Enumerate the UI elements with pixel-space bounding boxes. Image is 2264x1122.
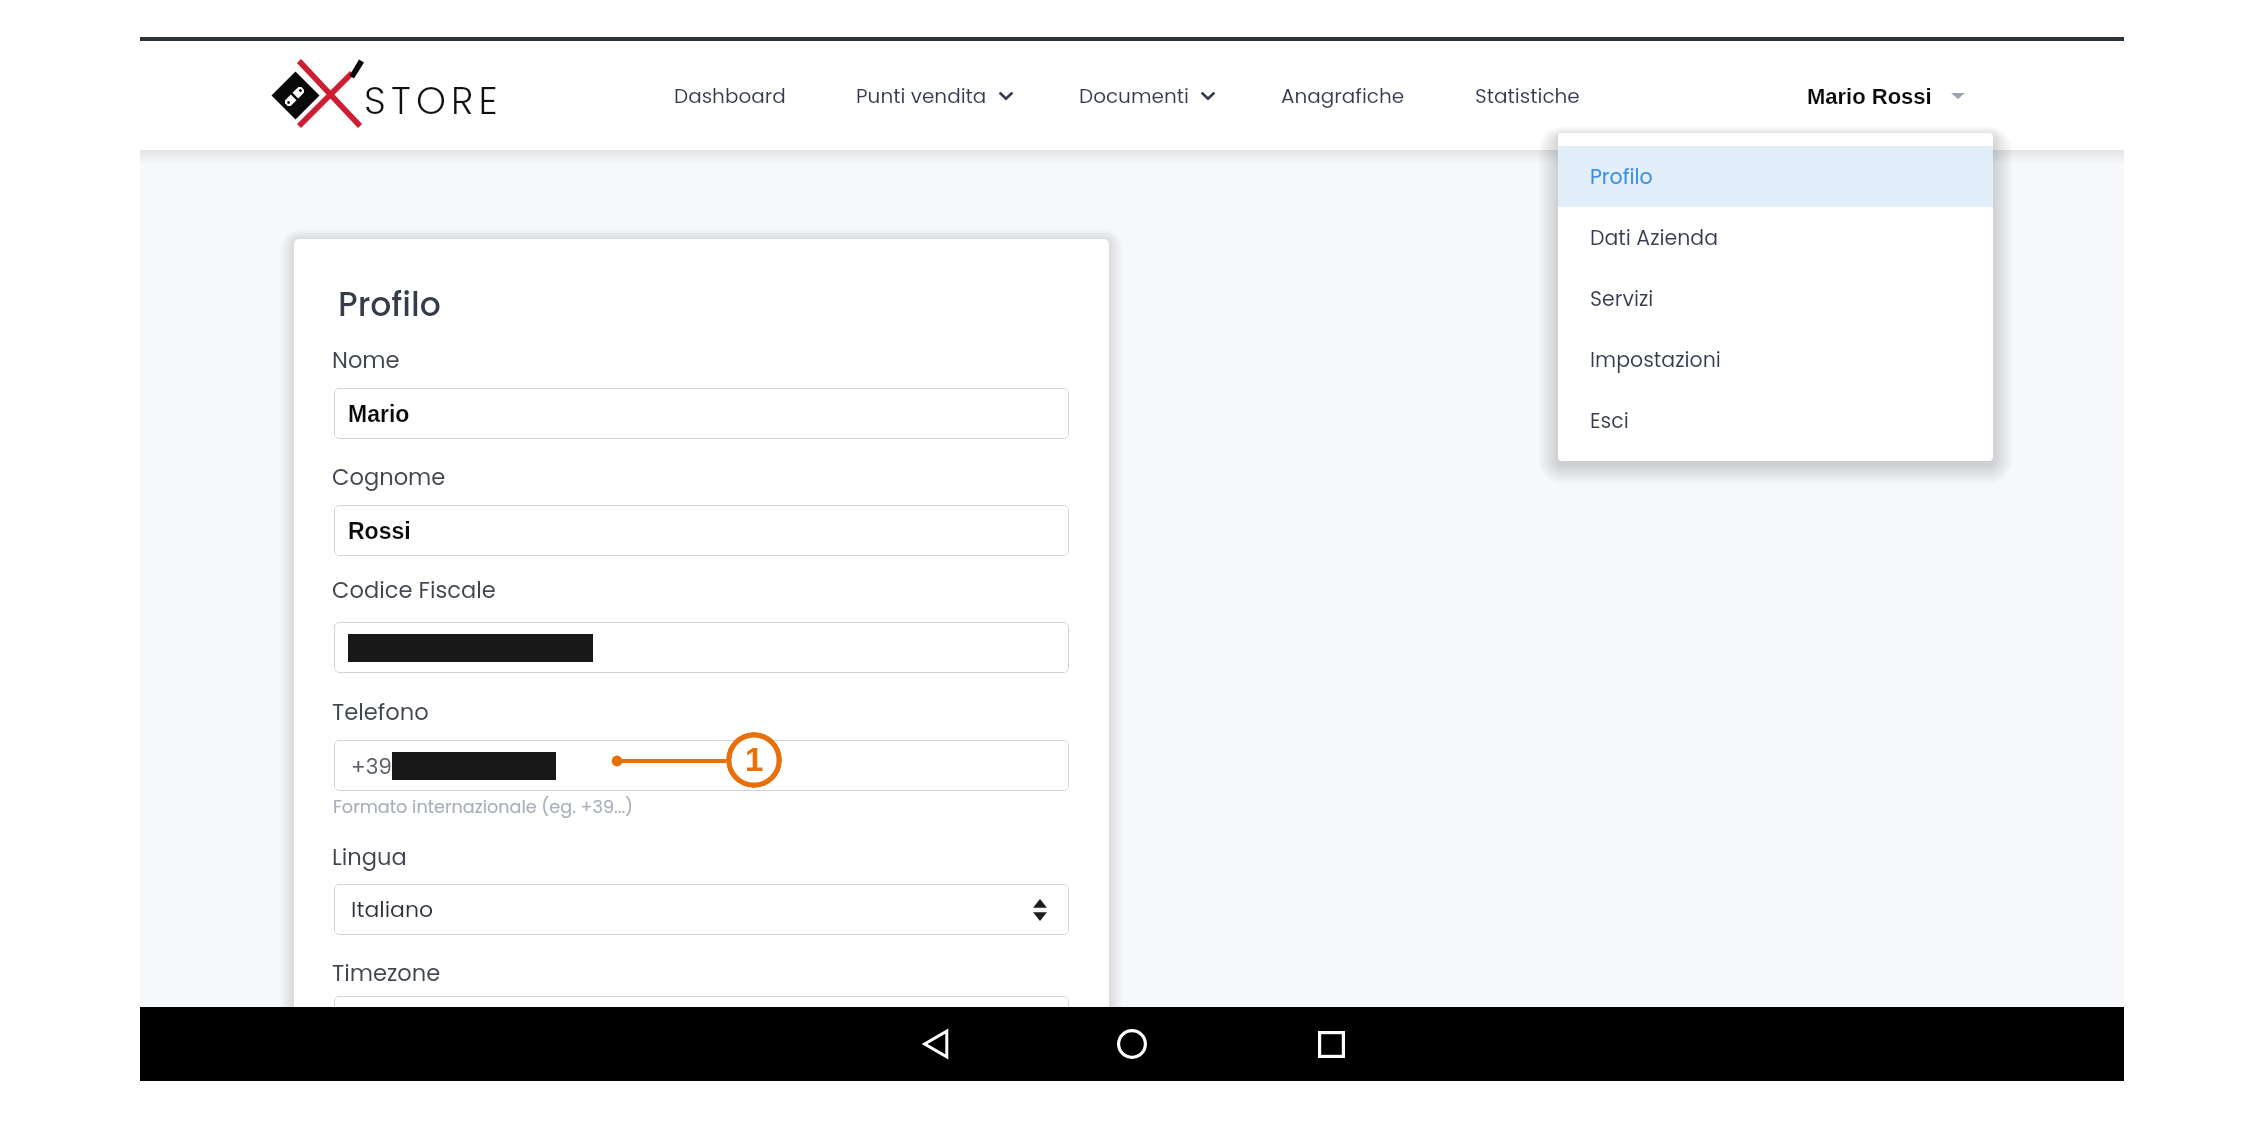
staticText: Rossi: [348, 518, 411, 544]
staticText: Profilo: [338, 281, 441, 327]
button[interactable]: Documenti: [1069, 70, 1225, 122]
button[interactable]: Rossi: [334, 505, 1069, 556]
staticText: Statistiche: [1475, 82, 1580, 110]
staticText: Formato internazionale (eg. +39...): [333, 795, 634, 820]
button[interactable]: Esci: [1558, 390, 1993, 451]
button[interactable]: Back: [899, 1007, 973, 1081]
button[interactable]: Dati Azienda: [1558, 207, 1993, 268]
staticText: Nome: [332, 344, 400, 376]
button[interactable]: Anagrafiche: [1271, 70, 1415, 122]
staticText: Dati Azienda: [1590, 223, 1719, 252]
button[interactable]: [334, 622, 1069, 673]
staticText: Punti vendita: [856, 82, 987, 110]
staticText: Telefono: [332, 696, 429, 728]
button[interactable]: Servizi: [1558, 268, 1993, 329]
staticText: Codice Fiscale: [332, 574, 496, 606]
button[interactable]: Punti vendita: [846, 70, 1023, 122]
button[interactable]: Home: [1095, 1007, 1169, 1081]
staticText: Impostazioni: [1590, 345, 1721, 374]
button[interactable]: [334, 996, 1069, 1047]
staticText: Anagrafiche: [1281, 82, 1405, 110]
staticText: Cognome: [332, 461, 446, 493]
button[interactable]: +39: [334, 740, 1069, 791]
button[interactable]: Statistiche: [1465, 70, 1590, 122]
button[interactable]: Mario: [334, 388, 1069, 439]
staticText: STORE: [364, 74, 503, 127]
staticText: +39: [351, 751, 392, 781]
button[interactable]: Impostazioni: [1558, 329, 1993, 390]
staticText: Dashboard: [674, 82, 786, 110]
staticText: Profilo: [1590, 162, 1653, 191]
staticText: Lingua: [332, 841, 407, 873]
staticText: Mario Rossi: [1807, 84, 1932, 109]
staticText: Timezone: [332, 957, 441, 989]
staticText: Documenti: [1079, 82, 1189, 110]
button[interactable]: Profilo: [1558, 146, 1993, 207]
staticText: Esci: [1590, 406, 1629, 435]
button[interactable]: Recents: [1294, 1007, 1368, 1081]
button[interactable]: Italiano: [334, 884, 1069, 935]
button[interactable]: XSTORE home: [265, 55, 500, 135]
staticText: Mario: [348, 401, 410, 427]
button[interactable]: Mario Rossi: [1797, 70, 1975, 122]
staticText: 1: [745, 741, 764, 778]
staticText: Italiano: [351, 894, 434, 925]
button[interactable]: Dashboard: [664, 70, 796, 122]
staticText: Servizi: [1590, 284, 1654, 313]
